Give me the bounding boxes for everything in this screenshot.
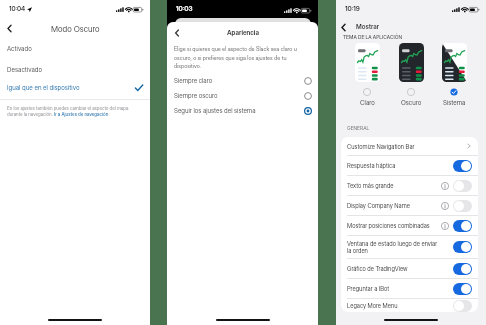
button[interactable]: Seguir los ajustes del sistema <box>167 103 318 118</box>
button[interactable]: Texto más grande <box>341 176 478 195</box>
staticText: Activado <box>7 45 32 53</box>
button[interactable]: Ventana de estado luego de enviar la ord… <box>341 236 478 258</box>
staticText: Siempre oscuro <box>174 92 218 100</box>
button[interactable] <box>399 43 424 82</box>
button[interactable]: Back <box>4 23 15 34</box>
button[interactable]: Display Company Name <box>341 196 478 215</box>
staticText: GENERAL <box>347 125 370 131</box>
staticText: En los ajustes también puedes cambiar el… <box>7 105 129 111</box>
button[interactable]: Siempre oscuro <box>167 88 318 103</box>
button[interactable]: Oscuro <box>407 88 415 96</box>
staticText: Texto más grande <box>347 182 457 189</box>
button[interactable]: Claro <box>363 88 371 96</box>
staticText: Sistema <box>443 99 466 107</box>
other: Back <box>338 22 349 33</box>
button[interactable]: Toggle <box>453 283 472 295</box>
button[interactable]: Preguntar a IBot <box>341 279 478 298</box>
other: Back <box>4 23 15 34</box>
other: Back <box>172 28 182 38</box>
button[interactable] <box>442 43 467 82</box>
staticText: Desactivado <box>7 66 43 74</box>
button[interactable]: Siempre claro <box>167 73 318 88</box>
button[interactable]: Back <box>172 28 182 38</box>
staticText: Apariencia <box>227 29 259 37</box>
button[interactable]: Toggle <box>453 160 472 172</box>
button[interactable]: Toggle <box>453 220 472 232</box>
staticText: 10:04 <box>9 5 26 13</box>
button[interactable] <box>355 43 380 82</box>
staticText: durante la navegación. <box>7 111 54 117</box>
button[interactable]: Customize Navigation Bar <box>341 137 478 155</box>
button[interactable]: Respuesta háptica <box>341 156 478 175</box>
staticText: Gráfico de TradingView <box>347 265 457 272</box>
staticText: Oscuro <box>401 99 422 107</box>
staticText: Igual que en el dispositivo <box>7 84 80 92</box>
staticText: Mostrar <box>356 23 380 31</box>
staticText: Elige si quieres que el aspecto de Slack… <box>174 46 306 69</box>
button[interactable]: Back <box>338 22 349 33</box>
staticText: Customize Navigation Bar <box>347 143 415 150</box>
staticText: Respuesta háptica <box>347 162 457 169</box>
button[interactable]: Toggle <box>453 180 472 192</box>
staticText: Siempre claro <box>174 77 213 85</box>
staticText: TEMA DE LA APLICACIÓN <box>343 34 403 40</box>
staticText: Claro <box>360 99 375 107</box>
staticText: 10:03 <box>176 5 193 13</box>
button[interactable]: Legacy More Menu <box>341 299 478 312</box>
staticText: Seguir los ajustes del sistema <box>174 107 256 115</box>
button[interactable]: Toggle <box>453 200 472 212</box>
button[interactable]: Ir a Ajustes de navegación <box>54 111 109 117</box>
button[interactable]: Gráfico de TradingView <box>341 259 478 278</box>
staticText: 10:19 <box>345 5 360 13</box>
button[interactable]: Igual que en el dispositivo <box>0 78 150 98</box>
button[interactable]: Toggle <box>453 300 472 312</box>
button[interactable]: Toggle <box>453 263 472 275</box>
staticText: Display Company Name <box>347 202 457 209</box>
button[interactable]: Desactivado <box>0 60 150 80</box>
staticText: Modo Oscuro <box>51 24 100 34</box>
button[interactable]: Mostrar posiciones combinadas <box>341 216 478 235</box>
staticText: Ventana de estado luego de enviar la ord… <box>347 240 441 255</box>
staticText: Legacy More Menu <box>347 302 457 309</box>
staticText: Mostrar posiciones combinadas <box>347 222 457 229</box>
button[interactable]: Activado <box>0 39 150 59</box>
button[interactable]: Toggle <box>453 241 472 253</box>
staticText: Preguntar a IBot <box>347 285 457 292</box>
button[interactable]: Sistema <box>450 88 458 96</box>
